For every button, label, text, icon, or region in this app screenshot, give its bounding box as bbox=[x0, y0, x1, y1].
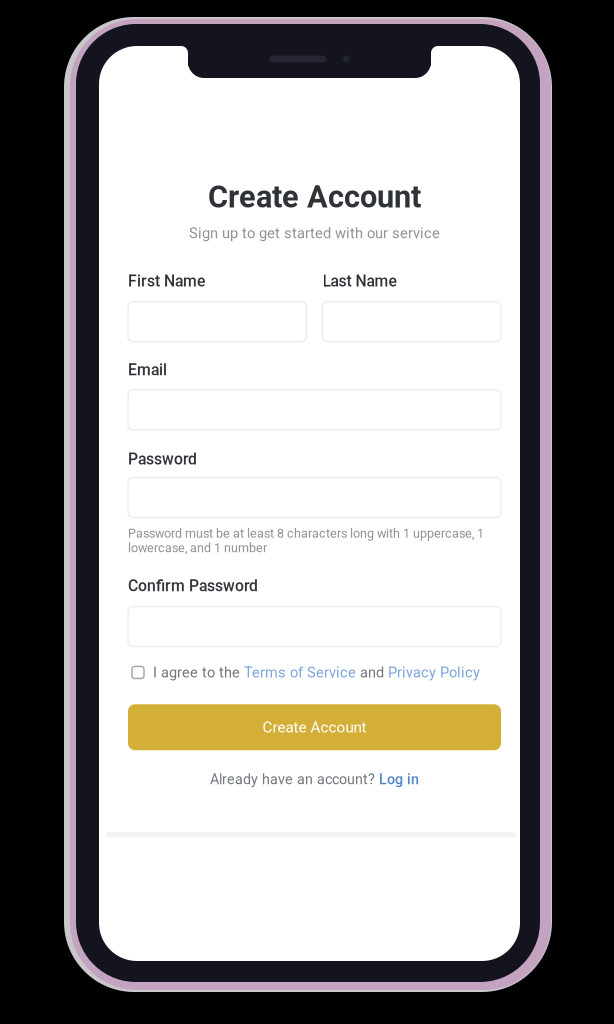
staticText: I agree to the bbox=[153, 664, 244, 681]
staticText: Email bbox=[128, 361, 167, 379]
staticText: First Name bbox=[128, 272, 205, 290]
staticText: Password bbox=[128, 450, 197, 468]
button[interactable]: Already have an account? bbox=[128, 771, 501, 787]
staticText: Log in bbox=[379, 771, 419, 788]
button[interactable]: I agree to the bbox=[128, 664, 501, 680]
staticText: Sign up to get started with our service bbox=[189, 224, 440, 242]
staticText: Create Account bbox=[262, 718, 366, 736]
button[interactable]: Create Account bbox=[128, 704, 501, 750]
staticText: and bbox=[356, 664, 388, 681]
staticText: Privacy Policy bbox=[388, 664, 480, 681]
staticText: Last Name bbox=[322, 272, 396, 290]
staticText: Already have an account? bbox=[210, 771, 379, 788]
staticText: Confirm Password bbox=[128, 577, 258, 595]
staticText: Create Account bbox=[208, 179, 421, 215]
staticText: Password must be at least 8 characters l… bbox=[128, 526, 484, 555]
staticText: Terms of Service bbox=[244, 664, 356, 681]
